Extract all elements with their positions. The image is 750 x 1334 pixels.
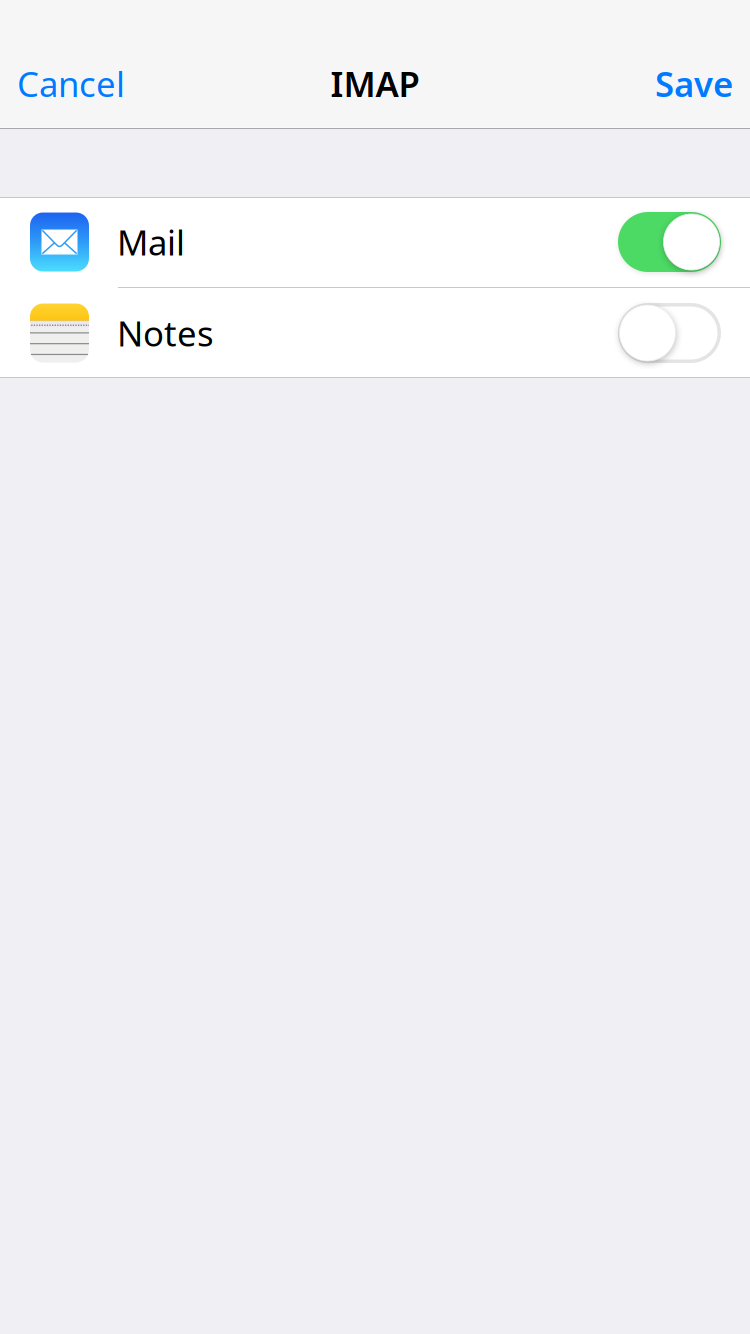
button[interactable]: Notes <box>0 288 750 378</box>
staticText: Cancel <box>17 60 125 106</box>
staticText: IMAP <box>330 60 419 106</box>
button[interactable]: Cancel <box>0 40 137 127</box>
button[interactable]: Mail, on <box>618 212 721 272</box>
staticText: Save <box>655 60 733 106</box>
staticText: Mail <box>117 219 185 265</box>
staticText: Notes <box>117 310 214 356</box>
button[interactable]: Save <box>643 40 750 127</box>
button[interactable]: Notes, off <box>618 303 721 363</box>
button[interactable]: Mail <box>0 197 750 287</box>
